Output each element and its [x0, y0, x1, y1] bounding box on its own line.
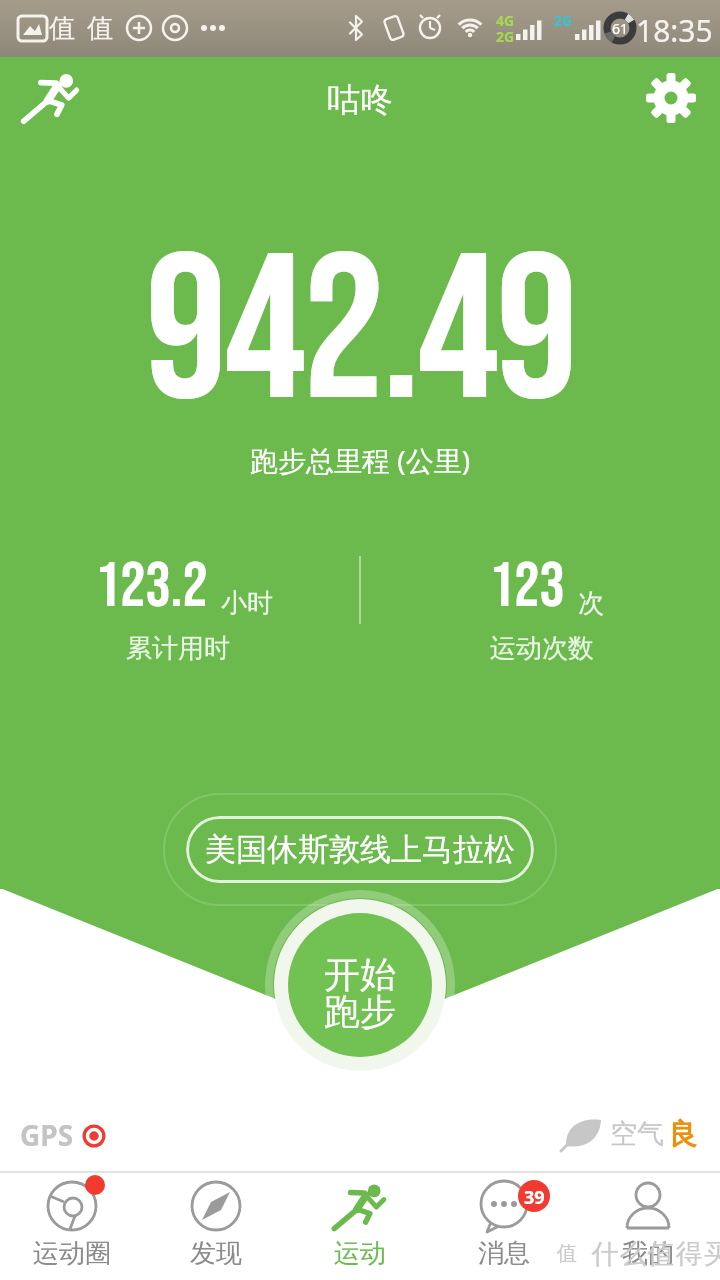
staticText: 什么值得买 — [591, 1237, 720, 1271]
button[interactable]: GPS — [14, 1108, 124, 1164]
staticText: 18:35 — [636, 10, 713, 46]
button[interactable]: 39 — [432, 1173, 576, 1280]
staticText: 运动 — [334, 1237, 386, 1270]
staticText: 4G — [496, 11, 515, 29]
button[interactable]: 发现 — [144, 1173, 288, 1280]
staticText: 我的 — [622, 1237, 674, 1270]
button[interactable] — [636, 63, 706, 133]
staticText: 2G — [496, 27, 515, 45]
button[interactable]: 我的 — [576, 1173, 720, 1280]
staticText: 123 — [489, 549, 565, 625]
staticText: 美国休斯敦线上马拉松 — [205, 830, 515, 869]
staticText: 开始 — [324, 952, 396, 996]
staticText: 良 — [668, 1116, 697, 1153]
button[interactable]: 空气 — [556, 1108, 706, 1164]
staticText: GPS — [20, 1116, 74, 1154]
staticText: 39 — [524, 1185, 545, 1207]
staticText: 咕咚 — [327, 79, 393, 121]
staticText: 次 — [578, 587, 604, 620]
button[interactable] — [274, 899, 446, 1071]
staticText: 消息 — [478, 1237, 530, 1270]
staticText: 2G — [554, 11, 573, 29]
staticText: 发现 — [190, 1237, 242, 1270]
staticText: 值 — [49, 12, 75, 45]
staticText: 值 — [87, 12, 113, 45]
staticText: 61 — [612, 19, 629, 37]
staticText: 跑步总里程 (公里) — [250, 441, 471, 479]
staticText: 跑步 — [324, 989, 396, 1033]
button[interactable]: 运动 — [288, 1173, 432, 1280]
button[interactable]: 美国休斯敦线上马拉松 — [186, 816, 534, 883]
staticText: 空气 — [610, 1117, 664, 1151]
staticText: 123.2 — [95, 549, 208, 625]
button[interactable] — [14, 62, 86, 134]
staticText: 运动圈 — [33, 1237, 111, 1270]
staticText: 值 — [557, 1241, 577, 1266]
staticText: 运动次数 — [490, 632, 594, 665]
staticText: 942.49 — [145, 212, 575, 432]
staticText: 累计用时 — [126, 632, 230, 665]
button[interactable]: 运动圈 — [0, 1173, 144, 1280]
staticText: 小时 — [221, 587, 273, 620]
